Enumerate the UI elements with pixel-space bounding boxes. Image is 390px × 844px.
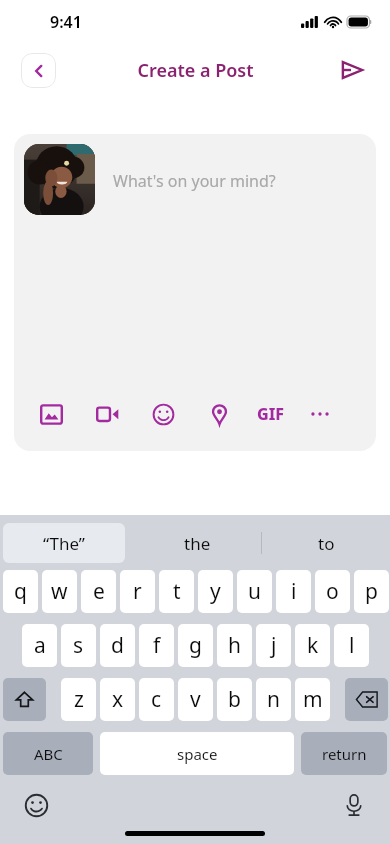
staticText: i [291, 577, 297, 606]
staticText: r [133, 577, 142, 606]
button[interactable]: r [120, 570, 155, 613]
staticText: f [153, 631, 161, 660]
staticText: w [51, 577, 68, 606]
button[interactable]: Dictation [338, 789, 370, 821]
staticText: ABC [34, 744, 63, 764]
button[interactable]: d [100, 624, 135, 667]
staticText: z [74, 685, 84, 714]
staticText: b [228, 685, 241, 714]
staticText: l [349, 631, 355, 660]
button[interactable]: Backspace [345, 678, 388, 721]
button[interactable]: k [295, 624, 330, 667]
button[interactable]: z [61, 678, 96, 721]
staticText: return [322, 744, 367, 764]
button[interactable]: Profile photo [24, 144, 95, 215]
staticText: p [365, 577, 378, 606]
button[interactable]: Back [21, 53, 56, 88]
button[interactable]: g [178, 624, 213, 667]
button[interactable]: m [295, 678, 330, 721]
staticText: t [173, 577, 181, 606]
button[interactable]: ABC [3, 732, 93, 775]
staticText: What's on your mind? [113, 170, 276, 192]
button[interactable]: c [139, 678, 174, 721]
button[interactable]: j [256, 624, 291, 667]
staticText: n [267, 685, 280, 714]
button[interactable]: “The” [3, 523, 125, 563]
button[interactable]: y [198, 570, 233, 613]
staticText: u [248, 577, 261, 606]
staticText: the [184, 532, 211, 555]
button[interactable]: x [100, 678, 135, 721]
staticText: q [14, 577, 27, 606]
staticText: x [112, 685, 124, 714]
button[interactable]: l [334, 624, 369, 667]
staticText: m [303, 685, 323, 714]
staticText: “The” [43, 532, 85, 555]
button[interactable]: u [237, 570, 272, 613]
button[interactable]: i [276, 570, 311, 613]
button[interactable]: o [315, 570, 350, 613]
button[interactable]: e [81, 570, 116, 613]
button[interactable]: Video [92, 399, 122, 429]
staticText: GIF [257, 403, 285, 425]
staticText: j [271, 631, 277, 660]
staticText: y [210, 577, 221, 606]
button[interactable]: w [42, 570, 77, 613]
staticText: a [34, 631, 46, 660]
button[interactable]: Emoji [148, 399, 178, 429]
button[interactable]: Emoji keyboard [20, 789, 52, 821]
staticText: to [318, 532, 335, 555]
button[interactable]: v [178, 678, 213, 721]
staticText: c [151, 685, 162, 714]
button[interactable]: Photo [36, 399, 66, 429]
staticText: v [190, 685, 201, 714]
button[interactable]: Send [334, 52, 370, 88]
staticText: e [93, 577, 105, 606]
button[interactable]: the [133, 523, 261, 563]
button[interactable]: GIF [254, 397, 288, 431]
staticText: h [228, 631, 241, 660]
button[interactable]: Shift [3, 678, 46, 721]
staticText: space [177, 744, 218, 764]
staticText: s [73, 631, 84, 660]
staticText: Create a Post [137, 58, 254, 83]
staticText: 9:41 [50, 11, 82, 33]
button[interactable]: More [305, 399, 335, 429]
staticText: o [326, 577, 339, 606]
button[interactable]: h [217, 624, 252, 667]
button[interactable]: Location [204, 399, 234, 429]
staticText: d [111, 631, 124, 660]
button[interactable]: p [354, 570, 389, 613]
button[interactable]: to [265, 523, 387, 563]
staticText: g [189, 631, 202, 660]
button[interactable]: return [301, 732, 387, 775]
button[interactable]: s [61, 624, 96, 667]
button[interactable]: a [22, 624, 57, 667]
button[interactable]: q [3, 570, 38, 613]
button[interactable]: f [139, 624, 174, 667]
staticText: k [307, 631, 319, 660]
button[interactable]: n [256, 678, 291, 721]
button[interactable]: space [100, 732, 294, 775]
button[interactable]: b [217, 678, 252, 721]
button[interactable]: t [159, 570, 194, 613]
